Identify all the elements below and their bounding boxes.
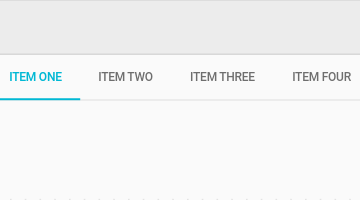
staticText: ITEM TWO [98,70,153,84]
button[interactable]: ITEM TWO [80,54,171,100]
button[interactable]: ITEM THREE [171,54,274,100]
staticText: ITEM FOUR [292,70,351,84]
button[interactable]: ITEM FOUR [274,54,360,100]
staticText: ITEM ONE [9,70,62,84]
button[interactable]: ITEM ONE [0,54,80,100]
staticText: ITEM THREE [190,70,255,84]
